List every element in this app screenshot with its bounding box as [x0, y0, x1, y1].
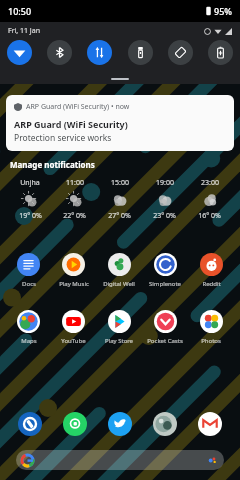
staticText: Maps	[21, 337, 37, 345]
staticText: ARP Guard (WiFi Security) • now	[26, 102, 130, 112]
staticText: Digital Well	[103, 280, 135, 288]
button[interactable]: Digital Well	[96, 253, 142, 288]
button[interactable]: Flashlight	[128, 40, 153, 65]
button[interactable]: BROWSER	[153, 412, 177, 436]
staticText: Photos	[201, 337, 221, 345]
staticText: Fri, 11 Jan	[8, 26, 41, 36]
button[interactable]: Reddit	[188, 253, 234, 288]
button[interactable]: Battery Saver	[208, 40, 233, 65]
staticText: 11:00	[66, 178, 84, 188]
staticText: 19° 0%	[19, 211, 42, 221]
staticText: 19:00	[156, 178, 174, 188]
staticText: 15:00	[111, 178, 129, 188]
button[interactable]: Bluetooth	[47, 40, 72, 65]
staticText: 23° 0%	[153, 211, 176, 221]
button[interactable]: Wi-Fi	[7, 40, 32, 65]
button[interactable]: TWITTER	[108, 412, 132, 436]
staticText: ARP Guard (WiFi Security)	[14, 118, 128, 130]
staticText: 22° 0%	[63, 211, 86, 221]
staticText: Reddit	[202, 280, 221, 288]
button[interactable]: Photos	[188, 310, 234, 345]
staticText: Unjha	[20, 178, 40, 188]
staticText: 27° 0%	[108, 211, 131, 221]
staticText: 16° 0%	[198, 211, 221, 221]
staticText: Simplenote	[149, 280, 181, 288]
button[interactable]: Pocket Casts	[142, 310, 188, 345]
button[interactable]: Docs	[6, 253, 51, 288]
button[interactable]: Mobile data	[87, 40, 112, 65]
staticText: Play Store	[105, 337, 133, 345]
button[interactable]: Maps	[6, 310, 51, 345]
button[interactable]: Simplenote	[142, 253, 188, 288]
button[interactable]: Play Music	[51, 253, 96, 288]
button[interactable]: Search	[16, 450, 224, 470]
staticText: YouTube	[61, 337, 86, 345]
staticText: 95%	[214, 5, 232, 17]
button[interactable]: PHONE	[18, 412, 42, 436]
button[interactable]: WHATSAPP	[63, 412, 87, 436]
button[interactable]: YouTube	[51, 310, 96, 345]
staticText: Pocket Casts	[147, 337, 183, 345]
staticText: Protection service works	[14, 132, 112, 144]
staticText: Play Music	[59, 280, 89, 288]
staticText: 10:50	[8, 5, 32, 17]
staticText: Manage notifications	[10, 159, 95, 170]
staticText: 23:00	[201, 178, 219, 188]
staticText: Docs	[22, 280, 36, 288]
button[interactable]: Play Store	[96, 310, 142, 345]
button[interactable]: Auto rotate	[168, 40, 193, 65]
button[interactable]: Manage notifications	[10, 159, 95, 170]
button[interactable]: ARP Guard (WiFi Security) • now	[6, 95, 234, 151]
button[interactable]: GMAIL	[198, 412, 222, 436]
